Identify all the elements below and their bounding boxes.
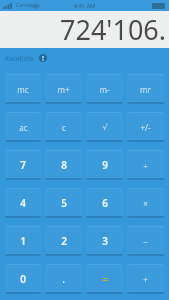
staticText: 0 — [20, 272, 26, 286]
staticText: mc — [17, 84, 29, 95]
button[interactable]: − — [127, 226, 164, 256]
button[interactable]: ac — [5, 112, 41, 142]
staticText: 724'106. — [60, 11, 166, 48]
staticText: mr — [140, 84, 151, 95]
staticText: 6 — [102, 196, 108, 210]
button[interactable]: m- — [86, 74, 123, 104]
button[interactable]: mc — [5, 74, 41, 104]
staticText: Carrier — [16, 2, 33, 9]
staticText: m- — [99, 84, 110, 95]
staticText: 2 — [61, 234, 67, 248]
button[interactable]: ÷ — [127, 150, 164, 180]
staticText: √ — [102, 123, 108, 132]
staticText: 1 — [20, 234, 26, 248]
button[interactable]: 0 — [5, 264, 41, 294]
button[interactable]: 4 — [5, 188, 41, 218]
staticText: +/- — [140, 122, 151, 133]
staticText: 7 — [20, 158, 26, 172]
button[interactable]: mr — [127, 74, 164, 104]
button[interactable]: Info — [38, 53, 48, 63]
button[interactable]: 8 — [45, 150, 82, 180]
staticText: . — [62, 272, 65, 286]
button[interactable]: m+ — [45, 74, 82, 104]
staticText: 3 — [102, 234, 108, 248]
button[interactable]: c — [45, 112, 82, 142]
button[interactable]: . — [45, 264, 82, 294]
staticText: 4 — [20, 196, 26, 210]
staticText: ac — [19, 122, 28, 133]
staticText: 5 — [61, 196, 67, 210]
staticText: − — [143, 236, 148, 247]
button[interactable]: 3 — [86, 226, 123, 256]
staticText: 9 — [102, 158, 108, 172]
staticText: = — [102, 272, 108, 286]
staticText: KataKata — [5, 54, 34, 63]
button[interactable]: 9 — [86, 150, 123, 180]
staticText: 8 — [61, 158, 67, 172]
staticText: 9:41 AM — [74, 2, 96, 9]
button[interactable]: × — [127, 188, 164, 218]
staticText: ÷ — [143, 160, 148, 171]
button[interactable]: + — [127, 264, 164, 294]
button[interactable]: 2 — [45, 226, 82, 256]
staticText: m+ — [57, 84, 70, 95]
button[interactable]: 7 — [5, 150, 41, 180]
button[interactable]: 1 — [5, 226, 41, 256]
button[interactable]: +/- — [127, 112, 164, 142]
staticText: c — [62, 122, 66, 133]
button[interactable]: 6 — [86, 188, 123, 218]
button[interactable]: 5 — [45, 188, 82, 218]
staticText: × — [143, 198, 148, 209]
staticText: + — [143, 274, 148, 285]
button[interactable]: = — [86, 264, 123, 294]
button[interactable]: √ — [86, 112, 123, 142]
